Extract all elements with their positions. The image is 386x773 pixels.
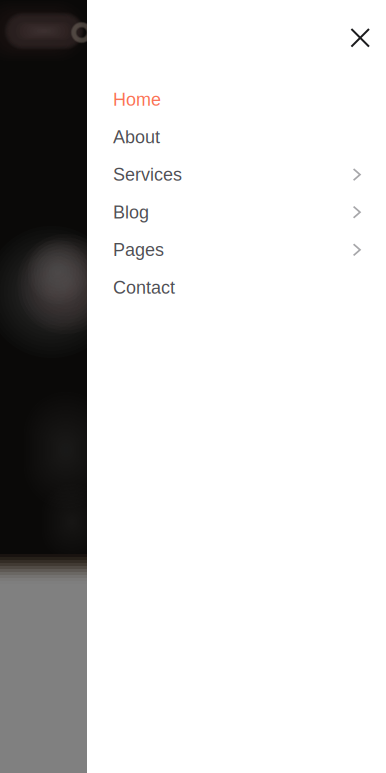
button[interactable]: Pages xyxy=(113,231,361,269)
staticText: About xyxy=(113,127,160,147)
button[interactable]: Blog xyxy=(113,193,361,231)
button[interactable]: Close menu xyxy=(341,19,379,57)
button[interactable]: Contact xyxy=(113,269,361,306)
button[interactable]: Home xyxy=(113,81,361,118)
staticText: Pages xyxy=(113,240,164,260)
staticText: Blog xyxy=(113,202,149,222)
staticText: Home xyxy=(113,89,161,109)
button[interactable]: Services xyxy=(113,156,361,193)
button[interactable]: About xyxy=(113,118,361,156)
staticText: Services xyxy=(113,164,182,185)
staticText: Contact xyxy=(113,277,175,297)
